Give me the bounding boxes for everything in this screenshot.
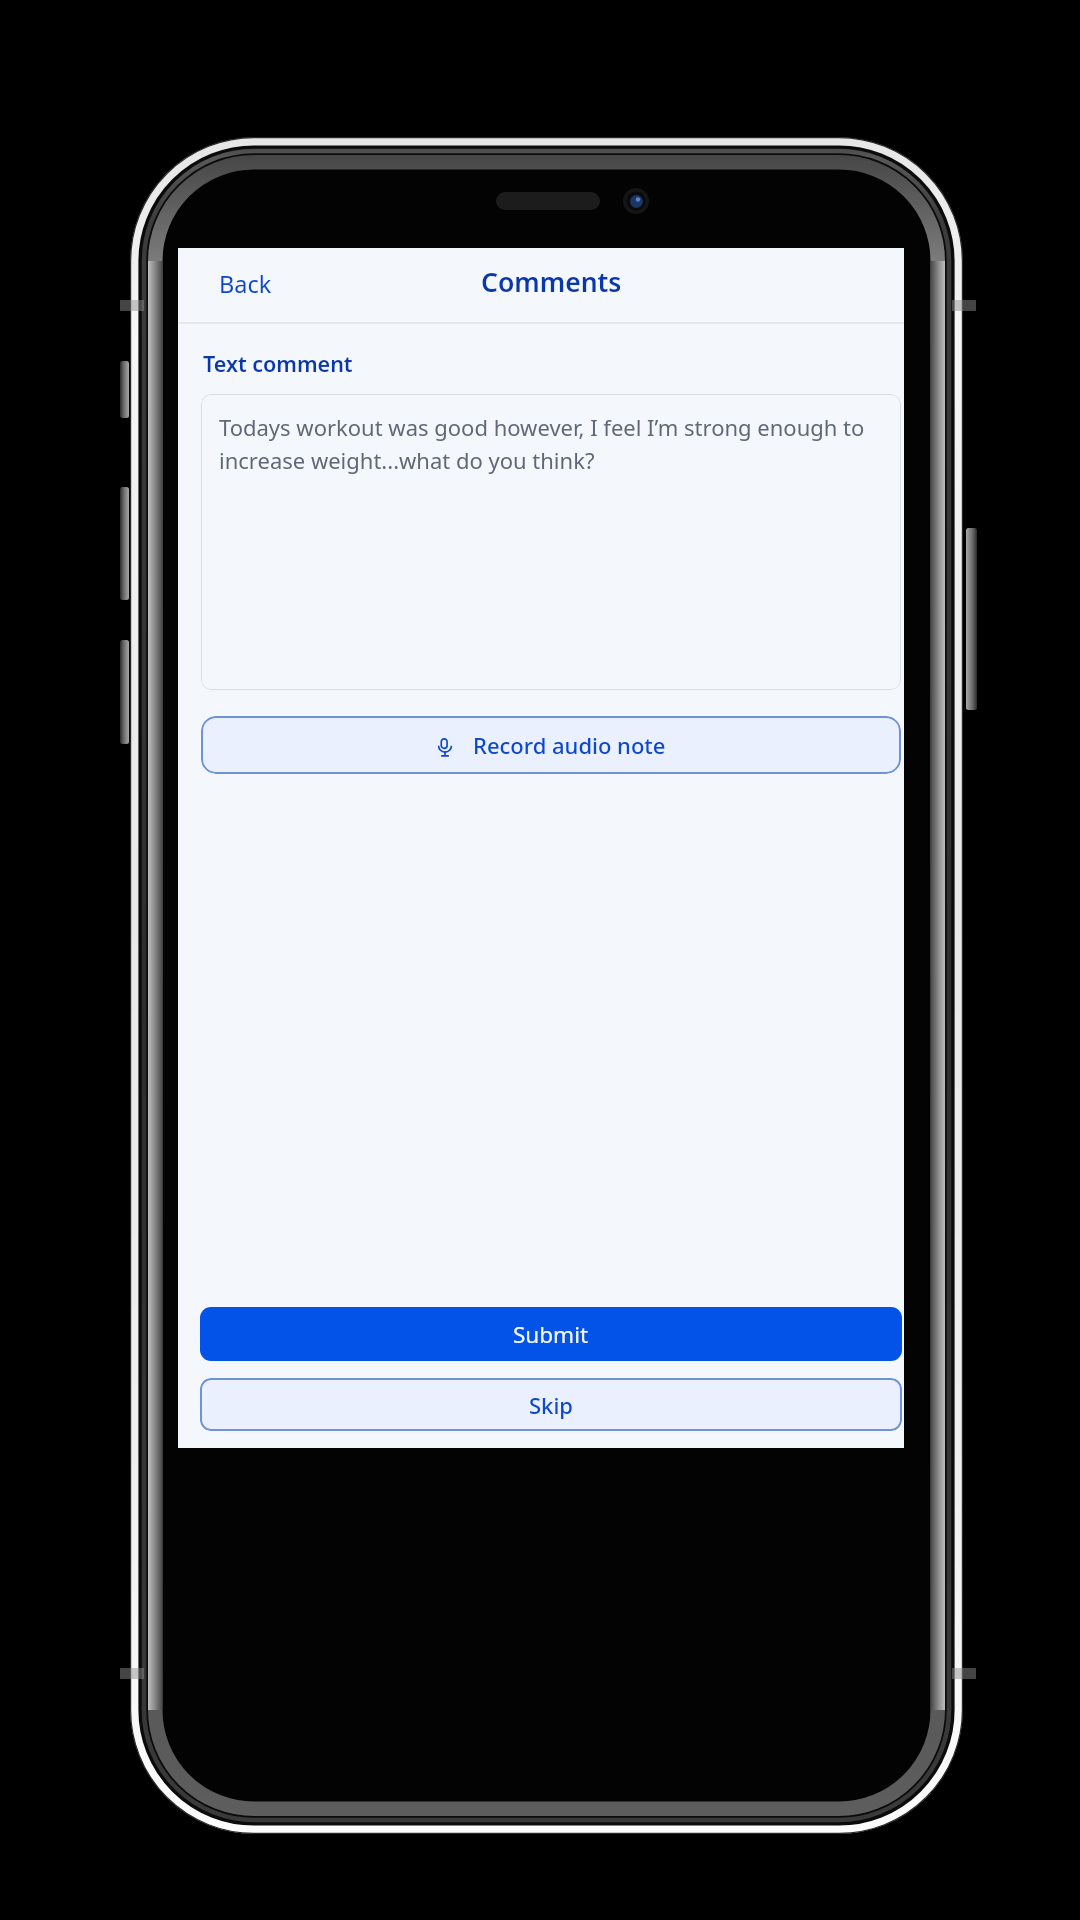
staticText: Skip <box>529 1390 573 1420</box>
other: Record audio note <box>438 738 452 757</box>
staticText: Todays workout was good however, I feel … <box>219 412 875 475</box>
button[interactable]: Record audio note <box>201 716 901 774</box>
staticText: Back <box>219 268 272 300</box>
staticText: Record audio note <box>473 730 666 760</box>
staticText: Submit <box>513 1319 589 1350</box>
button[interactable]: Todays workout was good however, I feel … <box>201 394 901 690</box>
staticText: Text comment <box>203 349 353 378</box>
button[interactable]: Back <box>186 255 305 313</box>
button[interactable]: Skip <box>200 1378 902 1431</box>
button[interactable]: Submit <box>200 1307 902 1361</box>
staticText: Comments <box>481 264 622 300</box>
